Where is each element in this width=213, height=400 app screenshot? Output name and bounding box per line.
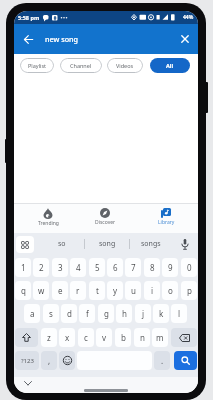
button[interactable]: 3: [52, 258, 68, 277]
button[interactable]: l: [171, 304, 187, 323]
button[interactable]: h: [116, 304, 132, 323]
staticText: Videos: [116, 62, 134, 69]
staticText: g: [104, 308, 109, 319]
staticText: z: [47, 332, 51, 343]
button[interactable]: song: [85, 236, 129, 252]
staticText: p: [187, 285, 192, 296]
staticText: Trending: [38, 220, 59, 227]
button[interactable]: [171, 328, 197, 347]
button[interactable]: [172, 24, 198, 54]
staticText: d: [67, 308, 72, 319]
button[interactable]: Discover: [77, 208, 133, 235]
button[interactable]: [15, 328, 38, 347]
button[interactable]: 8: [144, 258, 160, 277]
button[interactable]: Library: [138, 208, 194, 235]
staticText: u: [131, 285, 136, 296]
button[interactable]: 1: [15, 258, 31, 277]
button[interactable]: Playlist: [20, 58, 54, 73]
staticText: new song: [45, 34, 79, 44]
button[interactable]: m: [152, 328, 168, 347]
button[interactable]: 6: [107, 258, 123, 277]
button[interactable]: ,: [41, 351, 57, 370]
button[interactable]: c: [78, 328, 94, 347]
button[interactable]: t: [89, 281, 105, 300]
staticText: 4: [76, 262, 81, 273]
staticText: so: [58, 239, 66, 249]
staticText: l: [178, 308, 181, 319]
staticText: Library: [158, 219, 175, 226]
button[interactable]: e: [52, 281, 68, 300]
button[interactable]: q: [15, 281, 31, 300]
button[interactable]: x: [59, 328, 75, 347]
button[interactable]: j: [135, 304, 151, 323]
button[interactable]: 5: [89, 258, 105, 277]
button[interactable]: p: [181, 281, 197, 300]
staticText: Discover: [95, 219, 116, 226]
button[interactable]: [16, 236, 34, 253]
staticText: x: [65, 332, 70, 343]
staticText: Playlist: [28, 62, 47, 69]
staticText: y: [113, 285, 118, 296]
button[interactable]: [59, 351, 75, 370]
button[interactable]: songs: [129, 236, 173, 252]
button[interactable]: o: [162, 281, 178, 300]
staticText: n: [140, 332, 145, 343]
staticText: m: [156, 332, 164, 343]
button[interactable]: 9: [162, 258, 178, 277]
staticText: c: [84, 332, 88, 343]
button[interactable]: Trending: [20, 208, 76, 235]
button[interactable]: [14, 24, 42, 54]
staticText: i: [151, 285, 154, 296]
staticText: songs: [141, 239, 161, 249]
button[interactable]: a: [24, 304, 40, 323]
button[interactable]: Channel: [60, 58, 102, 73]
button[interactable]: w: [33, 281, 49, 300]
staticText: 5:58 pm: [18, 14, 40, 21]
button[interactable]: b: [115, 328, 131, 347]
button[interactable]: Videos: [107, 58, 143, 73]
staticText: ,: [48, 355, 51, 366]
button[interactable]: y: [107, 281, 123, 300]
staticText: 9: [168, 262, 173, 273]
button[interactable]: d: [61, 304, 77, 323]
staticText: t: [96, 285, 99, 296]
button[interactable]: .: [154, 351, 170, 370]
button[interactable]: k: [153, 304, 169, 323]
button[interactable]: i: [144, 281, 160, 300]
button[interactable]: f: [79, 304, 95, 323]
button[interactable]: All: [150, 58, 190, 73]
staticText: o: [168, 285, 173, 296]
button[interactable]: [176, 235, 194, 253]
staticText: f: [86, 308, 89, 319]
staticText: 0: [187, 262, 192, 273]
button[interactable]: r: [70, 281, 86, 300]
staticText: q: [21, 285, 26, 296]
staticText: r: [76, 285, 80, 296]
staticText: a: [30, 308, 35, 319]
staticText: 44%: [183, 14, 194, 21]
button[interactable]: 7: [125, 258, 141, 277]
button[interactable]: g: [98, 304, 114, 323]
staticText: h: [122, 308, 127, 319]
staticText: 7: [131, 262, 136, 273]
button[interactable]: z: [41, 328, 57, 347]
button[interactable]: 0: [181, 258, 197, 277]
button[interactable]: so: [40, 236, 84, 252]
staticText: s: [49, 308, 53, 319]
button[interactable]: 4: [70, 258, 86, 277]
staticText: v: [102, 332, 107, 343]
button[interactable]: s: [43, 304, 59, 323]
staticText: Channel: [70, 62, 92, 69]
button[interactable]: v: [96, 328, 112, 347]
button[interactable]: [174, 351, 197, 370]
staticText: .: [161, 355, 164, 366]
staticText: k: [159, 308, 164, 319]
button[interactable]: n: [134, 328, 150, 347]
button[interactable]: u: [125, 281, 141, 300]
staticText: e: [58, 285, 63, 296]
button[interactable]: ?123: [15, 351, 39, 370]
staticText: ?123: [21, 357, 34, 365]
staticText: 6: [113, 262, 118, 273]
button[interactable]: 2: [33, 258, 49, 277]
